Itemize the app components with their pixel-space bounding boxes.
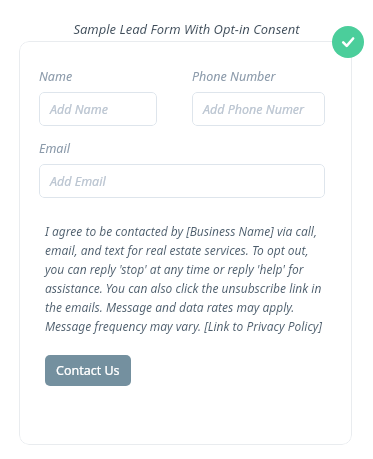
staticText: Sample Lead Form With Opt-in Consent — [0, 20, 373, 38]
button[interactable]: Add Email — [39, 164, 325, 198]
button[interactable]: Add Phone Numer — [192, 92, 325, 126]
staticText: I agree to be contacted by [Business Nam… — [45, 223, 325, 334]
button[interactable]: Contact Us — [45, 355, 131, 386]
staticText: Phone Number — [192, 68, 276, 85]
staticText: Contact Us — [56, 362, 120, 379]
staticText: Add Name — [50, 101, 108, 118]
staticText: Add Phone Numer — [203, 101, 305, 118]
staticText: Add Email — [50, 173, 106, 190]
button[interactable]: Add Name — [39, 92, 157, 126]
button[interactable]: Verified — [332, 26, 364, 58]
staticText: Name — [39, 68, 73, 85]
staticText: Email — [39, 140, 70, 157]
